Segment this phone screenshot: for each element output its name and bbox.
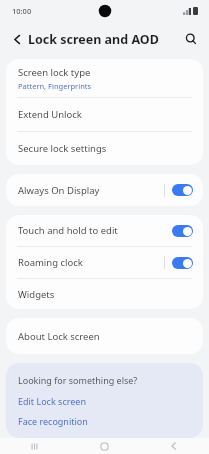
staticText: Looking for something else? bbox=[18, 374, 138, 386]
staticText: Secure lock settings bbox=[18, 142, 107, 155]
staticText: Roaming clock bbox=[18, 256, 164, 269]
button[interactable]: Recent apps bbox=[0, 438, 69, 454]
button[interactable]: Home bbox=[69, 438, 139, 454]
button[interactable]: Widgets bbox=[6, 279, 203, 309]
button[interactable]: Screen lock type bbox=[6, 59, 203, 97]
button[interactable]: Face recognition bbox=[18, 415, 191, 427]
button[interactable]: Touch and hold to edit toggle, on bbox=[172, 225, 193, 237]
button[interactable]: Always On Display toggle, on bbox=[172, 184, 193, 196]
staticText: Lock screen and AOD bbox=[28, 31, 159, 48]
staticText: Face recognition bbox=[18, 415, 88, 427]
staticText: 10:00 bbox=[12, 6, 32, 16]
staticText: Extend Unlock bbox=[18, 108, 82, 121]
staticText: About Lock screen bbox=[18, 330, 100, 343]
button[interactable]: About Lock screen bbox=[6, 318, 203, 354]
staticText: Edit Lock screen bbox=[18, 395, 86, 407]
button[interactable]: Search bbox=[178, 26, 204, 52]
button[interactable]: Edit Lock screen bbox=[18, 395, 191, 407]
button[interactable]: Extend Unlock bbox=[6, 98, 203, 131]
button[interactable]: Secure lock settings bbox=[6, 132, 203, 165]
button[interactable]: Roaming clock toggle, on bbox=[172, 257, 193, 269]
staticText: Screen lock type bbox=[18, 66, 91, 79]
button[interactable]: Back bbox=[4, 26, 30, 52]
staticText: Widgets bbox=[18, 288, 55, 301]
staticText: Touch and hold to edit bbox=[18, 224, 172, 237]
button[interactable]: Always On Display bbox=[6, 174, 203, 206]
button[interactable]: Roaming clock bbox=[6, 247, 203, 278]
staticText: Always On Display bbox=[18, 184, 164, 197]
button[interactable]: Touch and hold to edit bbox=[6, 215, 203, 246]
button[interactable]: Back bbox=[139, 438, 209, 454]
staticText: Pattern, Fingerprints bbox=[18, 81, 92, 91]
